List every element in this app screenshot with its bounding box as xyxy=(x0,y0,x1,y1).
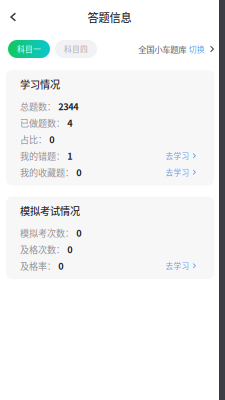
staticText: 及格次数 xyxy=(20,243,56,256)
button[interactable]: 去学习 xyxy=(165,257,196,274)
staticText: 模拟考试情况 xyxy=(20,203,80,218)
staticText: 答题信息 xyxy=(87,9,131,25)
staticText: 及格率 xyxy=(20,259,47,272)
button[interactable]: 返回 xyxy=(0,4,28,30)
staticText: ： xyxy=(56,117,65,129)
staticText: ： xyxy=(65,166,74,178)
staticText: ： xyxy=(56,243,65,255)
staticText: ： xyxy=(38,133,47,145)
staticText: ： xyxy=(56,150,65,162)
staticText: 总题数 xyxy=(20,100,47,113)
staticText: 去学习 xyxy=(165,260,189,271)
button[interactable]: 全国小车题库 xyxy=(138,34,214,64)
staticText: ： xyxy=(47,260,56,272)
staticText: 1 xyxy=(67,149,72,162)
staticText: 去学习 xyxy=(165,167,189,178)
staticText: 科目四 xyxy=(64,43,88,55)
staticText: 0 xyxy=(76,226,81,239)
button[interactable]: 去学习 xyxy=(165,164,196,180)
staticText: 全国小车题库 xyxy=(138,43,186,55)
staticText: 占比 xyxy=(20,133,38,146)
staticText: 已做题数 xyxy=(20,116,56,129)
staticText: 科目一 xyxy=(17,43,41,55)
staticText: 我的错题 xyxy=(20,149,56,162)
staticText: 0 xyxy=(58,259,63,272)
staticText: 0 xyxy=(76,166,81,179)
staticText: 去学习 xyxy=(165,150,189,161)
staticText: 4 xyxy=(67,116,72,129)
staticText: 0 xyxy=(67,243,72,256)
staticText: 0 xyxy=(49,133,54,146)
staticText: 切换 xyxy=(189,43,205,55)
staticText: ： xyxy=(47,100,56,112)
button[interactable]: 科目四 xyxy=(55,40,97,58)
staticText: 我的收藏题 xyxy=(20,166,65,179)
staticText: ： xyxy=(65,227,74,239)
button[interactable]: 科目一 xyxy=(8,40,50,58)
staticText: 2344 xyxy=(58,100,78,113)
staticText: 模拟考次数 xyxy=(20,226,65,239)
staticText: 学习情况 xyxy=(20,77,60,91)
button[interactable]: 去学习 xyxy=(165,147,196,164)
